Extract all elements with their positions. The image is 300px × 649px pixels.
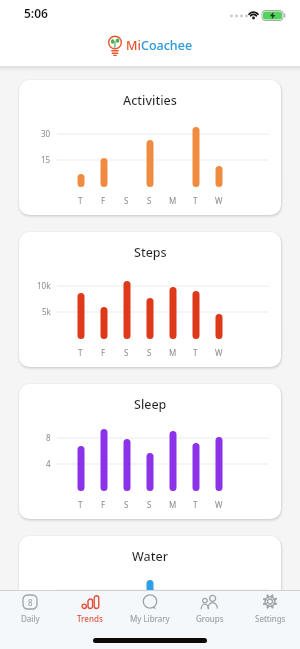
staticText: T xyxy=(78,499,83,510)
staticText: T xyxy=(193,195,198,206)
staticText: Mi xyxy=(126,37,141,54)
staticText: My Library xyxy=(130,613,170,624)
staticText: T xyxy=(193,347,198,358)
staticText: Activities xyxy=(123,92,177,109)
staticText: Coachee xyxy=(141,37,193,54)
staticText: S xyxy=(147,195,152,206)
staticText: 15 xyxy=(41,154,51,165)
staticText: 8 xyxy=(28,597,33,608)
staticText: Water xyxy=(132,548,168,565)
staticText: S xyxy=(147,499,152,510)
staticText: W xyxy=(215,347,223,358)
staticText: 4 xyxy=(46,458,51,469)
button[interactable]: Trends xyxy=(60,593,120,624)
staticText: M xyxy=(169,499,177,510)
staticText: S xyxy=(147,347,152,358)
staticText: Daily xyxy=(21,613,40,624)
staticText: S xyxy=(124,195,129,206)
staticText: W xyxy=(215,195,223,206)
staticText: M xyxy=(169,195,177,206)
staticText: 5:06 xyxy=(24,5,48,21)
button[interactable]: Sleep xyxy=(19,384,281,519)
staticText: T xyxy=(193,499,198,510)
button[interactable]: Activities xyxy=(19,80,281,215)
staticText: M xyxy=(169,347,177,358)
staticText: T xyxy=(78,195,83,206)
button[interactable]: Settings xyxy=(240,593,300,624)
button[interactable]: My Library xyxy=(120,593,180,624)
button[interactable]: Groups xyxy=(180,593,240,624)
staticText: 8 xyxy=(46,432,51,443)
button[interactable]: 8 xyxy=(0,593,60,624)
staticText: 10k xyxy=(37,280,51,291)
staticText: Trends xyxy=(77,613,103,624)
staticText: F xyxy=(101,195,106,206)
staticText: Steps xyxy=(134,244,167,261)
staticText: S xyxy=(124,347,129,358)
staticText: F xyxy=(101,347,106,358)
button[interactable]: Steps xyxy=(19,232,281,367)
staticText: F xyxy=(101,499,106,510)
button[interactable]: Water xyxy=(19,536,281,649)
staticText: S xyxy=(124,499,129,510)
staticText: 5k xyxy=(42,306,51,317)
staticText: W xyxy=(215,499,223,510)
staticText: T xyxy=(78,347,83,358)
staticText: Sleep xyxy=(134,396,167,413)
staticText: Settings xyxy=(255,613,286,624)
staticText: 30 xyxy=(41,128,51,139)
staticText: Groups xyxy=(196,613,224,624)
